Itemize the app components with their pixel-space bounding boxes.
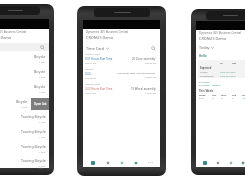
staticText: 1 PCS (39, 60, 46, 63)
staticText: Tue (232, 93, 242, 96)
staticText: Attendance (200, 74, 220, 77)
staticText: 15 Wheel assembly (131, 87, 156, 91)
button[interactable]: ITEM 1005 (0, 126, 49, 141)
staticText: Hello (199, 54, 207, 58)
staticText: 100 Deliver table, other furnishings (117, 72, 156, 75)
staticText: CRONUS Demo (0, 35, 12, 40)
button[interactable]: Favorites (226, 158, 235, 167)
button[interactable]: Open List (31, 98, 49, 110)
staticText: Bicycle (16, 99, 28, 104)
staticText: 2:52:02 PM (85, 77, 96, 80)
staticText: 2:53:45 PM (145, 62, 156, 65)
staticText: TCS00001 (199, 80, 211, 83)
staticText: In (220, 62, 232, 65)
button[interactable]: ITEM 1004 (0, 111, 49, 126)
button[interactable]: Search (0, 43, 49, 51)
staticText: 20 Chair assembly (132, 57, 156, 61)
button[interactable]: More options (146, 158, 155, 167)
staticText: 3.919 (242, 96, 245, 99)
staticText: Actual (200, 70, 220, 73)
button[interactable]: MONDAY 20 JUL (83, 83, 160, 98)
staticText: Open List (34, 102, 47, 106)
staticText: 0 (212, 96, 221, 99)
button[interactable]: ITEM 1006 (0, 141, 49, 156)
button[interactable]: Favorites (103, 158, 112, 167)
button[interactable]: ITEM 1007 (0, 156, 49, 168)
button[interactable]: MONDAY (83, 68, 160, 83)
button[interactable]: ITEM 1000 (0, 51, 49, 66)
button[interactable]: Search (39, 44, 46, 51)
staticText: 2:52:26 PM (145, 76, 156, 79)
staticText: 1 PCS (39, 120, 46, 123)
button[interactable]: Today (199, 45, 214, 50)
staticText: 0.02… (85, 72, 93, 76)
button[interactable]: Time Card (86, 46, 109, 51)
staticText: Expected (200, 66, 212, 69)
button[interactable]: ITEM 1003 (0, 96, 49, 111)
staticText: Touring Bicycle (21, 129, 46, 134)
staticText: CRONUS Demo (86, 35, 114, 40)
button[interactable]: Favorites (131, 158, 140, 167)
staticText: 2:39:16 PM (220, 70, 232, 73)
staticText: Bicycle (34, 84, 46, 89)
button[interactable]: ITEM 1001 (0, 66, 49, 81)
staticText: Touring Bicycle (21, 114, 46, 119)
staticText: MONDAY (85, 68, 95, 71)
staticText: 0 (232, 96, 242, 99)
button[interactable]: Search (150, 45, 157, 52)
staticText: 0 (221, 96, 232, 99)
staticText: Wed (242, 93, 245, 96)
staticText: 0.02 Hours Run Time (85, 87, 113, 91)
staticText: 1 PCS (39, 150, 46, 153)
staticText: MONDAY 20 JUL (85, 53, 101, 56)
staticText: Week (199, 93, 212, 96)
staticText: Mon (221, 93, 232, 96)
staticText: Today (199, 45, 210, 50)
staticText: Touring Bicycle (21, 144, 46, 149)
staticText: 1 PCS (39, 164, 46, 167)
button[interactable]: Dashboard (200, 158, 209, 167)
staticText: Dynamics 365 Business Central (199, 31, 242, 35)
staticText: 1 PCS (21, 105, 28, 108)
staticText: Touring Bicycle (21, 158, 46, 163)
staticText: Time Card (86, 46, 105, 51)
staticText: 1 PCS (39, 75, 46, 78)
staticText: Sun (212, 93, 221, 96)
staticText: 1 PCS (39, 135, 46, 138)
staticText: This Week (199, 89, 214, 93)
staticText: 2:53:21 PM (85, 62, 96, 65)
staticText: 2:00:14 PM (85, 92, 96, 95)
button[interactable]: Favorites (238, 158, 245, 167)
staticText: Dynamics 365 Business Central (86, 30, 129, 34)
staticText: 2:39:16 PM (220, 74, 232, 77)
staticText: 1 PCS (39, 90, 46, 93)
button[interactable]: Dashboard (88, 158, 97, 167)
staticText: Bicycle (34, 69, 46, 74)
staticText: 2:10:21 PM (145, 92, 156, 95)
staticText: 6.35 (199, 96, 212, 99)
button[interactable]: MONDAY 20 JUL (83, 53, 160, 68)
button[interactable]: Favorites (213, 158, 222, 167)
staticText: Bicycle (34, 54, 46, 59)
staticText: CRONUS Demo (199, 36, 227, 41)
staticText: CFS00001: Default (199, 83, 221, 86)
staticText: 0.01 Hours Run Time (85, 57, 113, 61)
staticText: 5:0 (232, 70, 236, 73)
staticText: 5:0 (232, 74, 236, 77)
staticText: Out (232, 62, 237, 65)
button[interactable]: Favorites (117, 158, 126, 167)
staticText: MONDAY 20 JUL (85, 83, 101, 86)
button[interactable]: ITEM 1002 (0, 81, 49, 96)
staticText: Dynamics 365 Business Central (0, 30, 27, 34)
